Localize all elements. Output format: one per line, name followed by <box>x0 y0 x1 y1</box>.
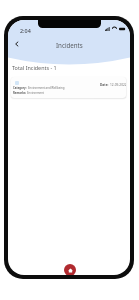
staticText: Remarks: <box>13 91 27 95</box>
staticText: Category: <box>13 86 28 90</box>
staticText: Incidents <box>56 41 83 49</box>
staticText: Environment <box>27 91 44 95</box>
staticText: 12-09-2022 <box>110 83 126 87</box>
staticText: Environment and Wellbeing <box>28 86 65 90</box>
staticText: Total Incidents - 1 <box>12 64 57 71</box>
button[interactable]: Category: <box>11 77 126 98</box>
staticText: 2:04 <box>20 27 31 34</box>
button[interactable]: Home <box>64 264 76 275</box>
staticText: Date: <box>100 83 110 87</box>
button[interactable]: Back <box>11 38 22 49</box>
